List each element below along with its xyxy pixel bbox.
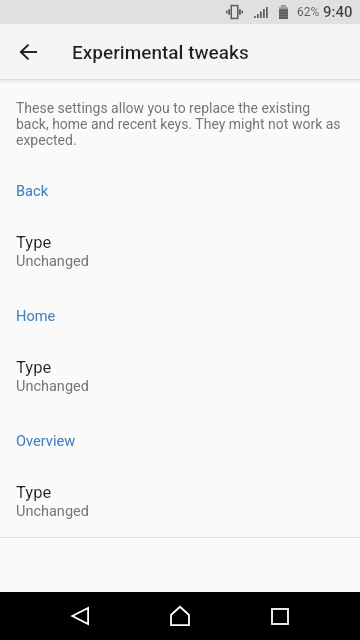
staticText: 62% xyxy=(297,5,320,19)
button[interactable]: Type xyxy=(0,199,360,271)
staticText: Unchanged xyxy=(16,503,89,520)
staticText: Experimental tweaks xyxy=(72,41,249,63)
button[interactable]: Type xyxy=(0,449,360,521)
staticText: Unchanged xyxy=(16,253,89,270)
button[interactable]: Type xyxy=(0,324,360,396)
staticText: Home xyxy=(16,307,56,324)
button[interactable]: Home xyxy=(130,592,230,640)
staticText: 9:40 xyxy=(323,3,353,21)
staticText: Back xyxy=(16,182,49,199)
staticText: Type xyxy=(16,358,52,377)
staticText: Unchanged xyxy=(16,378,89,395)
staticText: Overview xyxy=(16,432,76,449)
staticText: Type xyxy=(16,233,52,252)
staticText: Type xyxy=(16,483,52,502)
button[interactable]: Recent apps xyxy=(230,592,330,640)
button[interactable]: Back xyxy=(4,28,52,76)
button[interactable]: Back xyxy=(30,592,130,640)
staticText: These settings allow you to replace the … xyxy=(16,100,344,148)
